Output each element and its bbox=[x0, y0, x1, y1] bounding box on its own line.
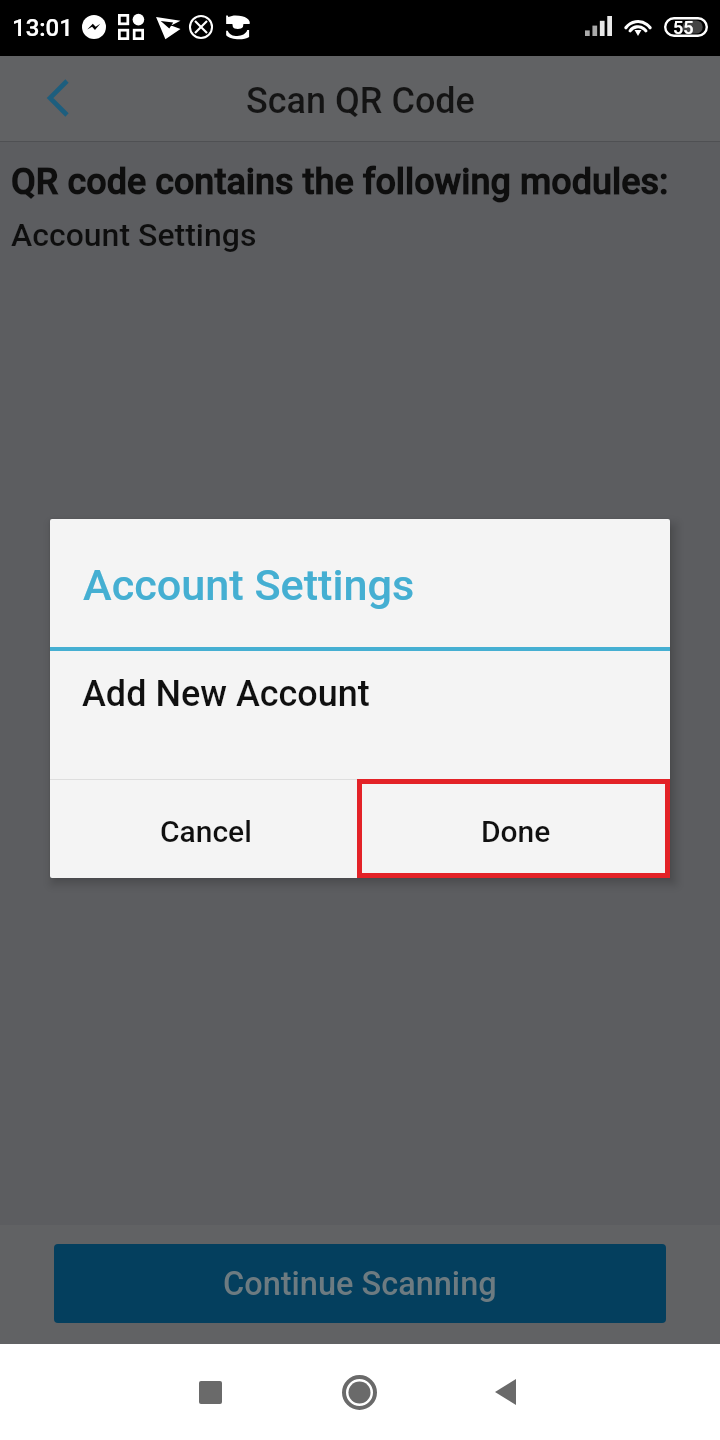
staticText: Cancel bbox=[160, 814, 252, 849]
staticText: 55 bbox=[673, 17, 694, 37]
staticText: Account Settings bbox=[83, 560, 415, 611]
staticText: Done bbox=[481, 814, 551, 849]
staticText: Account Settings bbox=[11, 216, 257, 254]
button[interactable]: Add New Account bbox=[50, 651, 670, 779]
button[interactable]: Back bbox=[0, 56, 110, 142]
button[interactable]: Recent apps bbox=[162, 1344, 259, 1440]
staticText: 13:01 bbox=[12, 14, 73, 42]
button[interactable]: Continue Scanning bbox=[54, 1244, 666, 1323]
button[interactable]: Home bbox=[311, 1344, 408, 1440]
staticText: QR code contains the following modules: bbox=[11, 161, 669, 203]
staticText: Continue Scanning bbox=[223, 1265, 497, 1303]
button[interactable]: Cancel bbox=[50, 779, 361, 878]
button[interactable]: Done bbox=[361, 779, 670, 878]
staticText: Scan QR Code bbox=[246, 80, 475, 122]
button[interactable]: Back bbox=[457, 1344, 554, 1440]
staticText: Add New Account bbox=[82, 673, 370, 715]
